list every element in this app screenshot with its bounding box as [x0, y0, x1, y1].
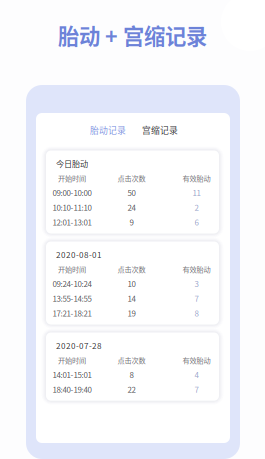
staticText: 50	[127, 187, 135, 198]
staticText: 开始时间	[58, 264, 86, 274]
staticText: 18:40-19:40	[52, 383, 91, 395]
staticText: 2020-07-28	[56, 340, 102, 351]
staticText: 10	[127, 278, 135, 289]
staticText: 8	[194, 307, 198, 319]
staticText: 3	[194, 278, 198, 289]
staticText: 24	[127, 201, 135, 213]
staticText: 4	[194, 369, 198, 380]
staticText: 8	[129, 369, 133, 380]
staticText: 有效胎动	[182, 264, 210, 274]
staticText: 14:01-15:01	[52, 369, 91, 380]
staticText: 19	[127, 307, 135, 319]
staticText: 17:21-18:21	[52, 307, 91, 319]
staticText: 胎动 + 宫缩记录	[58, 20, 207, 50]
staticText: 点击次数	[117, 355, 145, 365]
staticText: 7	[194, 292, 198, 304]
button[interactable]: 胎动记录	[82, 121, 134, 139]
staticText: 12:01-13:01	[52, 216, 91, 228]
staticText: 开始时间	[58, 355, 86, 365]
staticText: 6	[194, 216, 198, 228]
staticText: 09:00-10:00	[52, 187, 91, 198]
staticText: 10:10-11:10	[52, 201, 91, 213]
staticText: 开始时间	[58, 173, 86, 183]
staticText: 今日胎动	[56, 158, 88, 169]
staticText: 13:55-14:55	[52, 292, 91, 304]
staticText: 宫缩记录	[142, 124, 178, 136]
staticText: 点击次数	[117, 264, 145, 274]
staticText: 22	[127, 383, 135, 395]
staticText: 9	[129, 216, 133, 228]
staticText: 11	[192, 187, 200, 198]
staticText: 点击次数	[117, 173, 145, 183]
staticText: 有效胎动	[182, 173, 210, 183]
staticText: 2020-08-01	[56, 249, 102, 260]
staticText: 14	[127, 292, 135, 304]
staticText: 有效胎动	[182, 355, 210, 365]
staticText: 胎动记录	[90, 124, 126, 136]
staticText: 7	[194, 383, 198, 395]
staticText: 2	[194, 201, 198, 213]
staticText: 09:24-10:24	[52, 278, 91, 289]
button[interactable]: 宫缩记录	[134, 121, 186, 139]
